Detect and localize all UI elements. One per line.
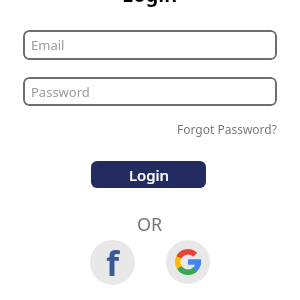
staticText: OR [137,212,163,237]
button[interactable]: Login [91,161,206,188]
button[interactable]: Email [23,30,277,60]
button[interactable]: Password [23,77,277,106]
staticText: f [106,240,120,285]
staticText: Email [31,36,65,54]
staticText: Password [31,83,90,101]
button[interactable] [166,240,210,284]
button[interactable]: f [90,240,135,285]
staticText: Login [122,0,178,8]
button[interactable]: Forgot Password? [177,121,277,137]
staticText: Login [129,165,169,185]
